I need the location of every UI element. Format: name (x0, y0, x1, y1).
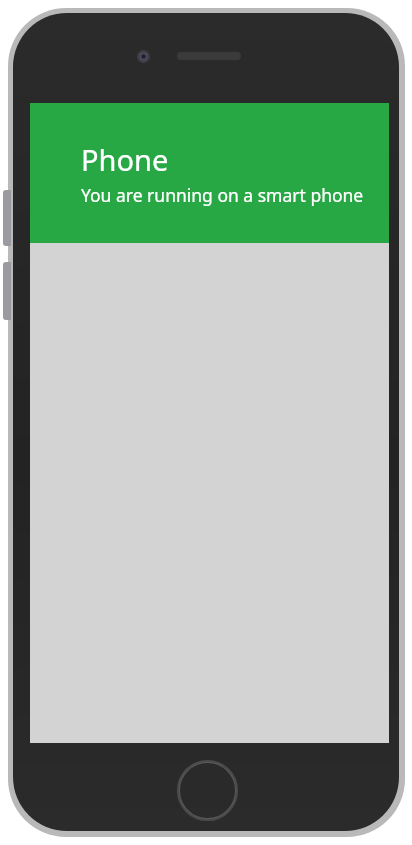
staticText: Phone (81, 140, 169, 179)
button[interactable]: Home (176, 759, 239, 822)
button[interactable]: Phone (30, 103, 389, 243)
staticText: You are running on a smart phone (81, 183, 364, 207)
